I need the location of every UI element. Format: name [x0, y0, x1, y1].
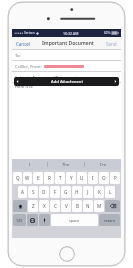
button[interactable]: B [72, 200, 82, 212]
staticText: space [69, 218, 80, 223]
button[interactable]: Change keyboard [27, 214, 38, 226]
button[interactable]: The [48, 159, 84, 170]
staticText: To: [15, 53, 21, 59]
staticText: L [109, 189, 112, 195]
staticText: U [80, 175, 84, 181]
button[interactable]: Send [105, 39, 118, 49]
button[interactable]: W [23, 172, 32, 184]
staticText: I [92, 175, 94, 181]
staticText: Verizon [24, 31, 35, 35]
staticText: M [97, 203, 102, 209]
button[interactable]: return [99, 214, 120, 226]
button[interactable]: J [83, 186, 93, 198]
button[interactable]: space [51, 214, 98, 226]
button[interactable]: L [105, 186, 115, 198]
button[interactable]: Cancel [15, 39, 32, 49]
staticText: S [32, 189, 35, 195]
staticText: K [98, 189, 101, 195]
button[interactable]: Previous [14, 77, 119, 86]
button[interactable]: R [44, 172, 54, 184]
button[interactable]: A [18, 186, 27, 198]
button[interactable]: O [99, 172, 109, 184]
staticText: Add Attachment [51, 79, 83, 85]
button[interactable]: Q [13, 172, 22, 184]
staticText: Important Document [42, 40, 94, 47]
staticText: 82% [104, 31, 110, 35]
button[interactable]: Next [112, 77, 119, 86]
button[interactable]: X [39, 200, 49, 212]
button[interactable]: C [50, 200, 60, 212]
staticText: J [87, 189, 89, 195]
button[interactable]: 123 [13, 214, 26, 226]
staticText: C [54, 203, 57, 209]
staticText: D [42, 189, 46, 195]
button[interactable]: To: [12, 50, 121, 61]
staticText: Z [32, 203, 35, 209]
staticText: 10:32 AM [63, 31, 79, 36]
staticText: T [59, 175, 62, 181]
staticText: X [43, 203, 46, 209]
staticText: Y [70, 175, 73, 181]
staticText: W [25, 175, 30, 181]
staticText: R [48, 175, 51, 181]
button[interactable]: Shift [13, 200, 27, 212]
button[interactable]: G [61, 186, 71, 198]
button[interactable]: Previous [14, 77, 21, 86]
button[interactable]: V [61, 200, 71, 212]
button[interactable]: E [33, 172, 43, 184]
staticText: I'm [100, 162, 107, 168]
staticText: The [62, 162, 70, 168]
staticText: F [54, 189, 57, 195]
button[interactable]: Dictate [39, 214, 50, 226]
staticText: Q [16, 175, 20, 181]
button[interactable]: N [83, 200, 93, 212]
staticText: Here it is! [15, 84, 34, 90]
button[interactable]: Home [59, 246, 75, 262]
button[interactable]: U [77, 172, 87, 184]
button[interactable]: K [94, 186, 104, 198]
button[interactable]: Y [66, 172, 76, 184]
staticText: O [102, 175, 106, 181]
button[interactable]: I [12, 159, 47, 170]
button[interactable]: I [88, 172, 98, 184]
staticText: Cc/Bcc, From: [15, 64, 42, 70]
staticText: Cancel [16, 41, 31, 47]
button[interactable]: Subject: [12, 72, 121, 83]
button[interactable]: Cc/Bcc, From: [12, 61, 121, 72]
button[interactable]: Z [28, 200, 38, 212]
button[interactable]: S [28, 186, 38, 198]
staticText: Important Document [33, 75, 77, 81]
staticText: Subject: [15, 75, 31, 81]
staticText: P [114, 175, 117, 181]
staticText: G [64, 189, 68, 195]
staticText: E [37, 175, 40, 181]
button[interactable]: Backspace [105, 200, 120, 212]
button[interactable]: M [94, 200, 104, 212]
staticText: return [104, 218, 116, 223]
staticText: 123 [16, 218, 23, 223]
button[interactable]: T [55, 172, 65, 184]
button[interactable]: D [39, 186, 49, 198]
staticText: B [76, 203, 79, 209]
button[interactable]: F [50, 186, 60, 198]
staticText: Send [106, 41, 117, 47]
button[interactable]: I'm [85, 159, 121, 170]
button[interactable]: H [72, 186, 82, 198]
staticText: I [29, 162, 31, 168]
staticText: A [21, 189, 24, 195]
staticText: H [75, 189, 79, 195]
button[interactable]: P [110, 172, 120, 184]
staticText: V [65, 203, 68, 209]
staticText: N [86, 203, 90, 209]
